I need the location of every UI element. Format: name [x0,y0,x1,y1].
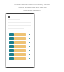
button[interactable] [9,52,30,56]
button[interactable] [9,56,30,60]
button[interactable] [9,36,30,40]
button[interactable] [9,32,30,36]
button[interactable] [9,40,30,44]
button[interactable] [9,48,30,52]
staticText: eiusmod tempor [23,9,41,12]
staticText: ctetur adipiscing elit sed do [18,6,47,9]
staticText: Lorem ipsum dolor sit amet, conse [14,3,50,6]
button[interactable] [9,44,30,48]
